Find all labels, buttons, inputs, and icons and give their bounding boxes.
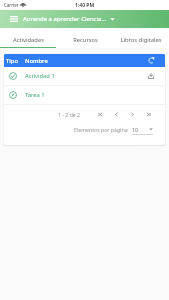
staticText: Aprende a aprender Ciencia... xyxy=(23,15,107,23)
button[interactable]: next xyxy=(124,108,140,121)
staticText: Carrier xyxy=(4,2,19,8)
staticText: Recursos xyxy=(73,36,98,44)
button[interactable]: Tarea 1 xyxy=(4,86,165,104)
staticText: Tarea 1 xyxy=(25,91,45,99)
button[interactable]: Actividad 1 xyxy=(4,67,165,85)
staticText: 10 xyxy=(132,126,138,133)
staticText: Actividades xyxy=(13,36,44,44)
staticText: Actividad 1 xyxy=(25,72,55,80)
staticText: Nombre xyxy=(25,57,48,65)
staticText: 1:40 PM xyxy=(75,2,95,9)
staticText: Elementos por página xyxy=(74,126,128,133)
button[interactable]: Download xyxy=(144,69,158,83)
button[interactable]: prev xyxy=(108,108,124,121)
button[interactable]: last xyxy=(140,108,156,121)
staticText: 1 - 2 de 2 xyxy=(58,111,81,118)
button[interactable]: Refresh xyxy=(145,54,158,67)
staticText: Tipo xyxy=(6,57,18,65)
button[interactable]: 10 xyxy=(132,123,153,135)
button[interactable]: Recursos xyxy=(57,28,113,47)
button[interactable]: Actividades xyxy=(0,28,57,47)
button[interactable]: first xyxy=(92,108,108,121)
button[interactable]: Menu xyxy=(0,10,23,28)
staticText: Libros digitales xyxy=(120,36,162,44)
button[interactable]: Libros digitales xyxy=(113,28,169,47)
